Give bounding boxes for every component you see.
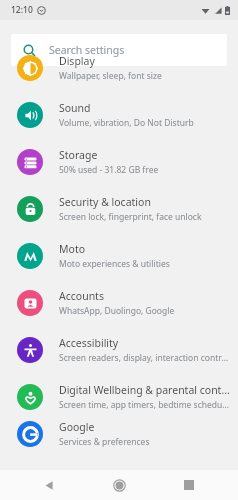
staticText: WhatsApp, Duolingo, Google	[59, 305, 175, 317]
staticText: Volume, vibration, Do Not Disturb	[59, 117, 194, 129]
staticText: Screen lock, fingerprint, face unlock	[59, 211, 202, 223]
staticText: Services & preferences	[59, 436, 150, 448]
button[interactable]: Search settings	[11, 34, 227, 66]
button[interactable]: Moto	[0, 232, 238, 279]
button[interactable]: Home	[98, 470, 140, 500]
button[interactable]: Accounts	[0, 279, 238, 326]
staticText: Security & location	[59, 195, 151, 209]
staticText: 12:10	[11, 4, 33, 16]
button[interactable]: Sound	[0, 91, 238, 138]
button[interactable]: Display	[0, 44, 238, 91]
staticText: Wallpaper, sleep, font size	[59, 70, 162, 82]
staticText: 50% used - 31.82 GB free	[59, 164, 159, 176]
staticText: Sound	[59, 101, 91, 115]
button[interactable]: Storage	[0, 138, 238, 185]
staticText: Storage	[59, 148, 98, 162]
staticText: Moto experiences & utilities	[59, 258, 170, 270]
staticText: Moto	[59, 242, 86, 256]
button[interactable]: Google	[0, 420, 238, 448]
staticText: Accessibility	[59, 336, 119, 350]
staticText: Accounts	[59, 289, 104, 303]
staticText: Screen time, app timers, bedtime schedul…	[59, 399, 230, 411]
button[interactable]: Back	[28, 470, 70, 500]
button[interactable]: Accessibility	[0, 326, 238, 373]
staticText: Search settings	[49, 43, 125, 57]
staticText: Google	[59, 420, 95, 434]
button[interactable]: Security & location	[0, 185, 238, 232]
button[interactable]: Digital Wellbeing & parental controls	[0, 373, 238, 420]
staticText: Display	[59, 54, 95, 68]
staticText: Screen readers, display, interaction con…	[59, 352, 230, 364]
staticText: Digital Wellbeing & parental controls	[59, 383, 230, 397]
button[interactable]: Recent apps	[168, 470, 210, 500]
